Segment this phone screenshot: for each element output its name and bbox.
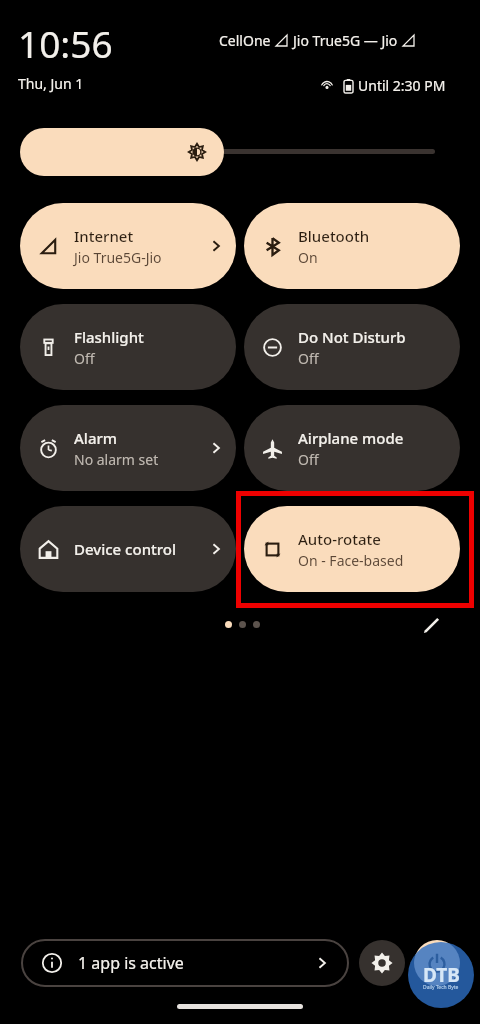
staticText: Airplane mode <box>298 428 404 448</box>
staticText: 10:56 <box>18 18 113 68</box>
staticText: Jio True5G-Jio <box>74 248 162 267</box>
staticText: 1 app is active <box>78 952 184 974</box>
button[interactable]: Internet <box>20 203 236 289</box>
staticText: No alarm set <box>74 450 159 469</box>
staticText: Off <box>74 349 95 368</box>
button[interactable]: Alarm <box>20 405 236 491</box>
staticText: Bluetooth <box>298 226 370 246</box>
staticText: Internet <box>74 226 134 246</box>
button[interactable]: Power <box>414 940 460 986</box>
staticText: Off <box>298 450 319 469</box>
staticText: Auto-rotate <box>298 529 381 549</box>
staticText: Device control <box>74 539 177 559</box>
button[interactable]: Brightness <box>20 128 460 176</box>
button[interactable]: Device control <box>20 506 236 592</box>
staticText: On <box>298 248 318 267</box>
staticText: Flashlight <box>74 327 144 347</box>
button[interactable]: Flashlight <box>20 304 236 390</box>
button[interactable]: Bluetooth <box>244 203 460 289</box>
staticText: Alarm <box>74 428 118 448</box>
button[interactable]: Auto-rotate <box>244 506 460 592</box>
button[interactable]: 1 app is active <box>22 940 348 986</box>
staticText: CellOne <box>219 31 271 50</box>
staticText: On - Face-based <box>298 551 404 570</box>
button[interactable]: Do Not Disturb <box>244 304 460 390</box>
staticText: Off <box>298 349 319 368</box>
staticText: Daily Tech Byte <box>423 984 459 991</box>
button[interactable]: Airplane mode <box>244 405 460 491</box>
button[interactable]: Edit tiles <box>416 610 446 640</box>
staticText: Jio True5G — Jio <box>293 31 398 50</box>
button[interactable]: Settings <box>359 940 405 986</box>
staticText: Until 2:30 PM <box>358 76 446 95</box>
staticText: Thu, Jun 1 <box>18 74 84 93</box>
staticText: DTB <box>423 962 460 988</box>
staticText: Do Not Disturb <box>298 327 406 347</box>
